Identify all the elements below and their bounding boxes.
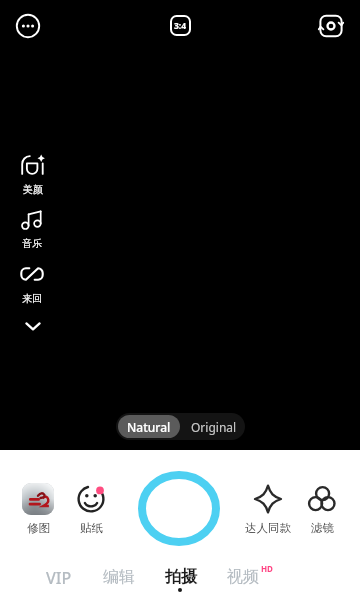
staticText: 来回	[22, 292, 42, 305]
button[interactable]: 3:4	[163, 8, 197, 42]
staticText: 修图	[27, 521, 50, 535]
button[interactable]: 滤镜	[294, 483, 350, 537]
staticText: 贴纸	[80, 521, 103, 535]
staticText: 编辑	[103, 567, 135, 587]
staticText: Natural	[127, 419, 171, 435]
button[interactable]: Shutter	[137, 469, 220, 547]
staticText: 滤镜	[311, 521, 334, 535]
button[interactable]: 音乐	[7, 206, 55, 252]
staticText: 美颜	[23, 183, 43, 196]
button[interactable]: Natural	[127, 415, 171, 438]
button[interactable]: 来回	[8, 264, 56, 307]
staticText: Original	[191, 419, 237, 435]
button[interactable]: 达人同款	[240, 483, 296, 537]
button[interactable]: 视频	[223, 567, 263, 599]
staticText: 视频	[227, 567, 259, 587]
button[interactable]: Collapse tools	[14, 314, 51, 338]
staticText: 达人同款	[245, 521, 291, 535]
button[interactable]: 编辑	[99, 567, 139, 599]
staticText: VIP	[46, 567, 72, 589]
staticText: 音乐	[22, 237, 42, 250]
button[interactable]: 拍摄	[161, 567, 201, 599]
button[interactable]: VIP	[42, 567, 76, 599]
button[interactable]: More options	[10, 8, 45, 43]
staticText: HD	[261, 563, 273, 574]
button[interactable]: 美颜	[8, 152, 56, 198]
button[interactable]: 贴纸	[63, 483, 119, 537]
button[interactable]: 修图	[10, 483, 66, 537]
button[interactable]: Switch camera	[313, 8, 348, 43]
staticText: 拍摄	[165, 567, 197, 587]
button[interactable]: Original	[191, 415, 237, 438]
staticText: 3:4	[174, 20, 187, 32]
